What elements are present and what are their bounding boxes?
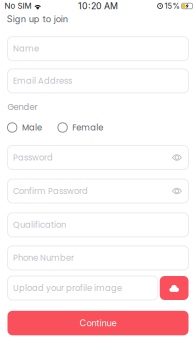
staticText: No SIM xyxy=(4,1,31,11)
staticText: Sign up to join xyxy=(7,13,68,24)
staticText: Gender xyxy=(7,101,37,113)
staticText: Continue xyxy=(79,318,116,329)
button[interactable]: Confirm Password xyxy=(7,179,188,203)
button[interactable]: Female xyxy=(58,122,103,133)
staticText: Female xyxy=(72,122,103,133)
button[interactable]: Qualification xyxy=(7,213,188,237)
staticText: Qualification xyxy=(13,219,66,231)
button[interactable]: Name xyxy=(7,37,188,61)
button[interactable]: Male xyxy=(7,122,42,133)
staticText: Password xyxy=(13,152,53,163)
staticText: Name xyxy=(13,43,39,54)
button[interactable]: Continue xyxy=(7,311,188,335)
button[interactable]: Email Address xyxy=(7,69,188,93)
staticText: 10:20 AM xyxy=(78,1,118,11)
staticText: Male xyxy=(22,122,42,133)
staticText: Email Address xyxy=(13,75,72,87)
button[interactable]: Upload your profile image xyxy=(7,276,158,300)
staticText: Upload your profile image xyxy=(13,282,122,294)
staticText: 15% xyxy=(164,1,179,10)
button[interactable]: Password xyxy=(7,145,188,169)
button[interactable]: Upload profile image xyxy=(160,276,188,300)
staticText: Confirm Password xyxy=(13,185,88,197)
button[interactable]: Phone Number xyxy=(7,246,188,270)
staticText: Phone Number xyxy=(13,252,74,264)
